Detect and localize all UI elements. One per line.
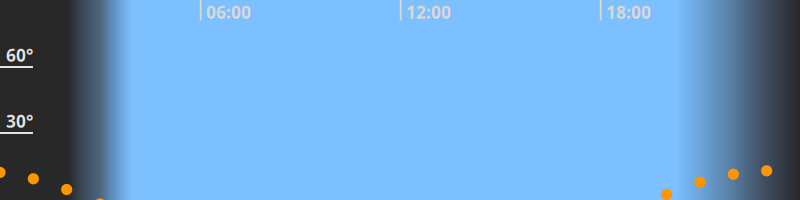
staticText: 18:00 — [606, 0, 651, 23]
staticText: 06:00 — [206, 0, 251, 23]
staticText: 60° — [6, 43, 33, 66]
button[interactable]: Hourly temperature chart — [0, 0, 800, 200]
staticText: 12:00 — [406, 0, 451, 23]
staticText: 30° — [6, 109, 33, 132]
